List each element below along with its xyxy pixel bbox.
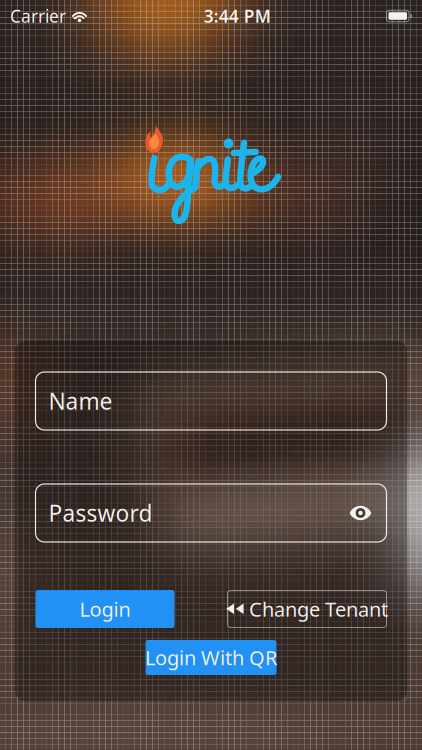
staticText: Change Tenant (249, 596, 388, 622)
button[interactable]: Show password (345, 498, 375, 528)
staticText: Name (48, 386, 112, 416)
staticText: Carrier (10, 4, 66, 27)
button[interactable]: Login (35, 590, 174, 628)
button[interactable]: Change Tenant (227, 590, 386, 627)
button[interactable]: Login With QR (145, 640, 276, 675)
staticText: 3:44 PM (204, 4, 271, 27)
staticText: Login (79, 596, 130, 622)
staticText: Login With QR (145, 644, 277, 671)
staticText: Password (48, 498, 152, 528)
